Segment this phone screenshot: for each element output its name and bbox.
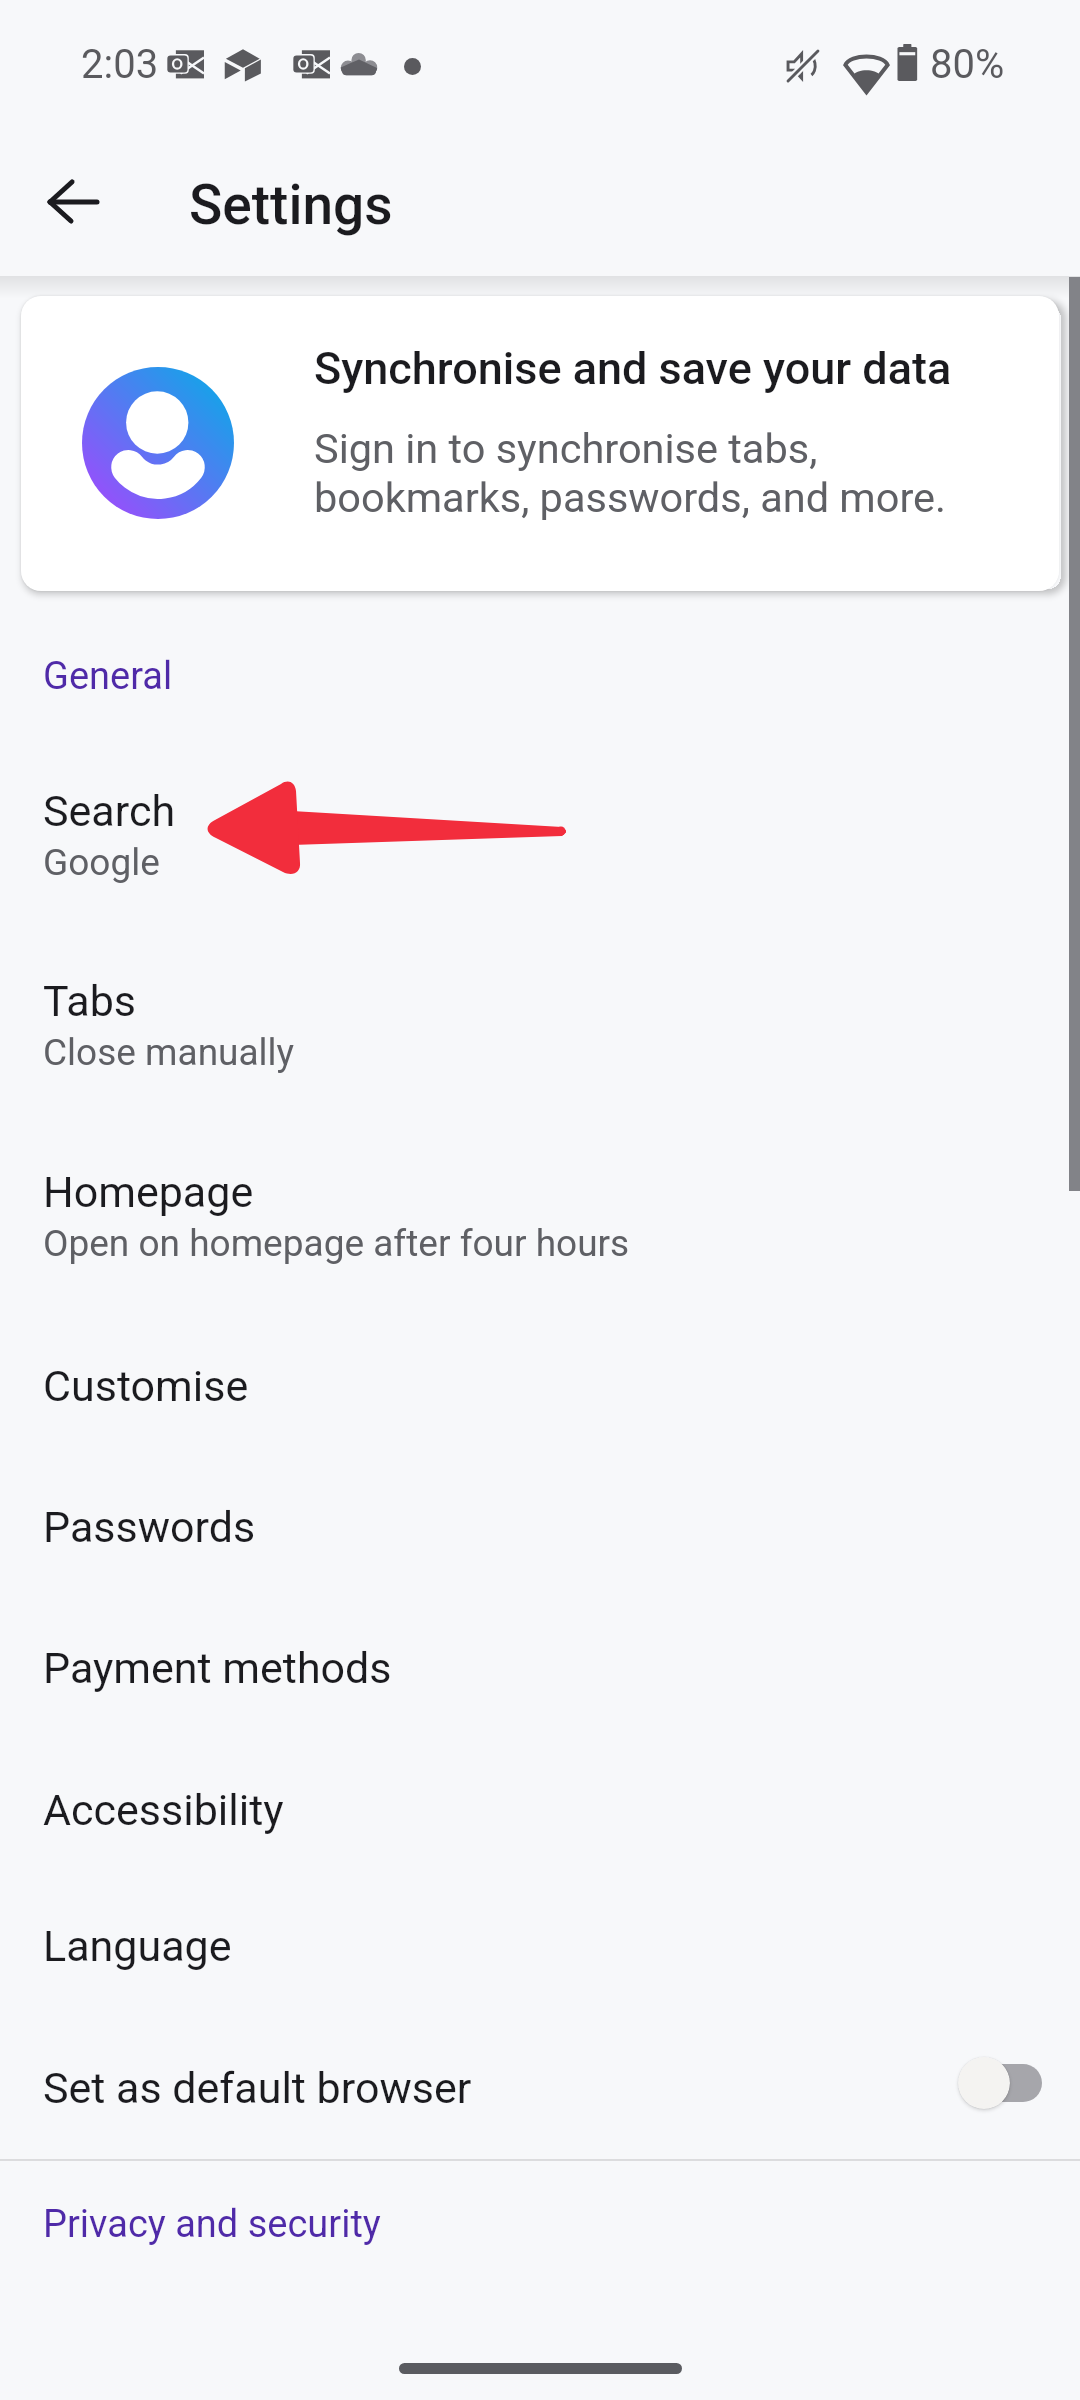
staticText: 2:03 (81, 41, 159, 88)
staticText: General (43, 654, 173, 699)
staticText: Language (43, 1921, 232, 1971)
button[interactable]: Set as default browser toggle, off (958, 2057, 1042, 2109)
button[interactable]: General (0, 640, 1080, 712)
staticText: 80% (930, 41, 1005, 88)
staticText: Payment methods (43, 1643, 392, 1693)
button[interactable]: Privacy and security (0, 2188, 1080, 2260)
staticText: Sign in to synchronise tabs, bookmarks, … (314, 424, 947, 522)
button[interactable]: Synchronise and save your data (21, 296, 1059, 591)
staticText: Close manually (43, 1031, 295, 1074)
staticText: Open on homepage after four hours (43, 1222, 630, 1265)
button[interactable]: Passwords (0, 1502, 1080, 1602)
button[interactable]: Search (0, 786, 1080, 946)
button[interactable]: Language (0, 1921, 1080, 2021)
staticText: Customise (43, 1361, 249, 1411)
staticText: Accessibility (43, 1785, 284, 1835)
button[interactable]: Payment methods (0, 1643, 1080, 1743)
button[interactable]: Tabs (0, 976, 1080, 1136)
button[interactable]: Accessibility (0, 1785, 1080, 1885)
button[interactable]: Customise (0, 1361, 1080, 1461)
button[interactable]: Back (16, 148, 124, 256)
staticText: Homepage (43, 1167, 254, 1217)
staticText: Privacy and security (43, 2202, 381, 2247)
button[interactable]: Set as default browser (0, 2063, 1080, 2163)
staticText: Passwords (43, 1502, 256, 1552)
staticText: Search (43, 786, 176, 836)
staticText: Google (43, 841, 160, 884)
staticText: Settings (189, 173, 393, 237)
staticText: Tabs (43, 976, 137, 1026)
button[interactable]: Homepage (0, 1167, 1080, 1327)
staticText: Synchronise and save your data (314, 342, 952, 395)
staticText: Set as default browser (43, 2063, 472, 2113)
